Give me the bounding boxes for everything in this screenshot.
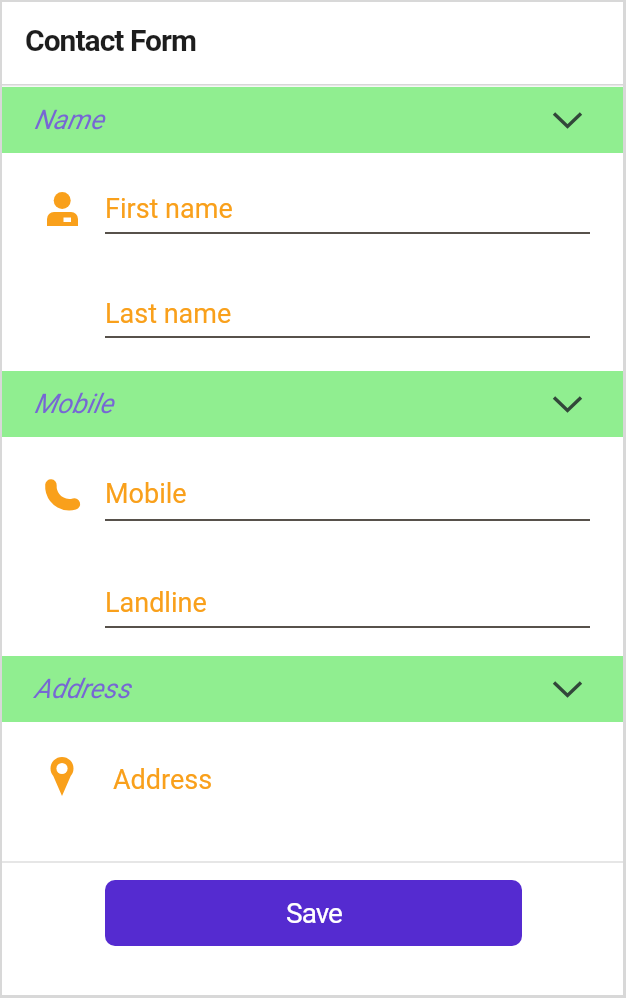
button[interactable]: Last name [105,298,232,330]
button[interactable]: First name [105,193,233,225]
staticText: Save [286,897,342,930]
button[interactable]: Address [113,764,213,796]
staticText: Mobile [34,388,114,420]
button[interactable] [105,760,590,808]
staticText: Name [34,104,104,136]
staticText: Address [34,673,131,705]
staticText: Contact Form [25,23,196,58]
button[interactable]: Save [105,880,522,946]
button[interactable] [105,294,590,339]
button[interactable]: Name [2,87,623,153]
button[interactable]: Mobile [2,371,623,437]
button[interactable]: Mobile [105,478,187,510]
button[interactable]: Address [2,656,623,722]
button[interactable] [105,474,590,522]
button[interactable]: Landline [105,587,207,619]
button[interactable] [105,189,590,235]
button[interactable] [105,583,590,629]
